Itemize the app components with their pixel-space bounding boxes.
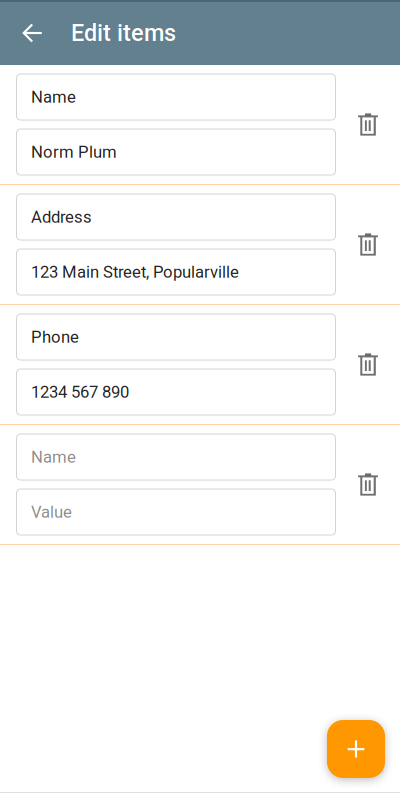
button[interactable]: Delete item (346, 462, 390, 506)
button[interactable]: Delete Address (346, 222, 390, 266)
staticText: Phone (31, 327, 79, 347)
button[interactable]: 1234 567 890 (16, 368, 336, 415)
button[interactable]: 123 Main Street, Popularville (16, 248, 336, 295)
button[interactable]: Back (10, 11, 54, 55)
staticText: Name (31, 87, 76, 107)
staticText: Value (31, 502, 72, 522)
staticText: Address (31, 207, 92, 227)
button[interactable]: Address (16, 193, 336, 240)
button[interactable]: Phone (16, 313, 336, 360)
button[interactable]: Norm Plum (16, 128, 336, 175)
button[interactable]: Value (16, 488, 336, 535)
staticText: Edit items (71, 19, 176, 47)
button[interactable]: Name (16, 433, 336, 480)
button[interactable]: Delete Name (346, 102, 390, 146)
staticText: Norm Plum (31, 142, 117, 162)
button[interactable]: Delete Phone (346, 342, 390, 386)
button[interactable]: Add item (327, 720, 385, 778)
staticText: 123 Main Street, Popularville (31, 262, 239, 282)
staticText: 1234 567 890 (31, 382, 129, 402)
staticText: Name (31, 447, 76, 467)
button[interactable]: Name (16, 73, 336, 120)
